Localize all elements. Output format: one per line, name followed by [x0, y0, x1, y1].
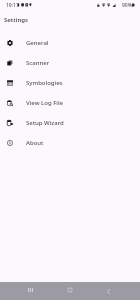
button[interactable]: General [0, 33, 140, 53]
button[interactable]: Back [102, 285, 114, 297]
staticText: Symbologies [26, 79, 63, 87]
button[interactable]: Symbologies [0, 73, 140, 93]
staticText: Setup Wizard [26, 119, 64, 127]
button[interactable]: About [0, 133, 140, 153]
button[interactable]: Scanner [0, 53, 140, 73]
staticText: Scanner [26, 59, 50, 67]
button[interactable]: Recent apps [24, 284, 36, 296]
button[interactable]: View Log File [0, 93, 140, 113]
staticText: 90% [122, 2, 132, 9]
button[interactable]: Setup Wizard [0, 113, 140, 133]
button[interactable]: Home [64, 284, 76, 296]
staticText: Settings [4, 16, 28, 24]
staticText: About [26, 139, 44, 147]
staticText: View Log File [26, 99, 64, 107]
staticText: General [26, 39, 49, 47]
staticText: 19:17 [6, 2, 19, 9]
